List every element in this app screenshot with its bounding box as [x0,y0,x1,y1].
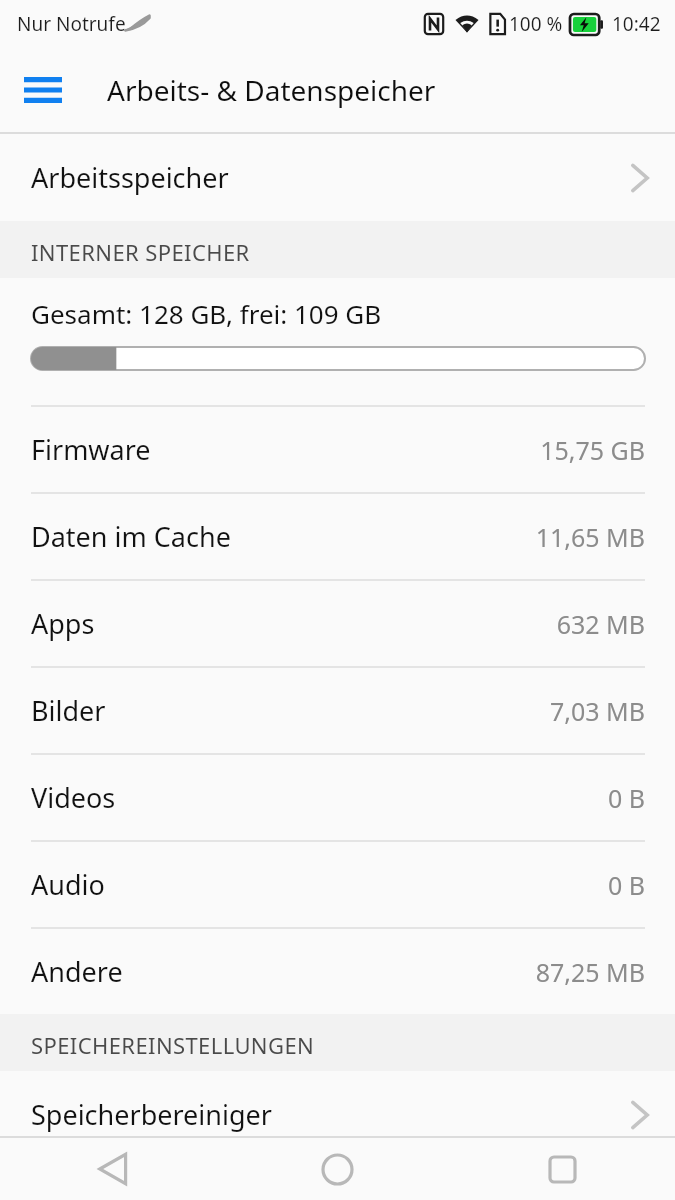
button[interactable]: Audio [0,842,675,927]
staticText: INTERNER SPEICHER [31,237,250,267]
staticText: Andere [31,953,123,990]
staticText: 7,03 MB [549,694,645,728]
staticText: Audio [31,866,105,903]
staticText: 100 % [509,11,563,37]
button[interactable]: Daten im Cache [0,494,675,579]
staticText: Arbeitsspeicher [31,159,229,196]
staticText: 15,75 GB [540,433,645,467]
button[interactable]: Übersicht [450,1138,675,1200]
staticText: Arbeits- & Datenspeicher [107,71,436,109]
staticText: 10:42 [612,11,661,37]
button[interactable]: Videos [0,755,675,840]
button[interactable]: Arbeitsspeicher [0,134,675,221]
staticText: 11,65 MB [535,520,645,554]
staticText: SPEICHEREINSTELLUNGEN [31,1030,315,1060]
staticText: 0 B [607,868,645,902]
button[interactable]: Zurück [0,1138,225,1200]
staticText: Apps [31,605,95,642]
button[interactable]: Bilder [0,668,675,753]
button[interactable]: Speicherbereiniger [0,1071,675,1158]
staticText: Speicherbereiniger [31,1096,272,1133]
staticText: Daten im Cache [31,518,231,555]
staticText: Firmware [31,431,151,468]
button[interactable]: Firmware [0,407,675,492]
staticText: 0 B [607,781,645,815]
staticText: Nur Notrufe [17,11,126,37]
button[interactable]: Menü [14,61,72,119]
button[interactable]: Andere [0,929,675,1014]
button[interactable]: Apps [0,581,675,666]
staticText: Bilder [31,692,106,729]
staticText: Gesamt: 128 GB, frei: 109 GB [31,296,382,331]
staticText: 87,25 MB [535,955,645,989]
button[interactable]: Startbildschirm [225,1138,450,1200]
staticText: Videos [31,779,116,816]
staticText: 632 MB [556,607,645,641]
